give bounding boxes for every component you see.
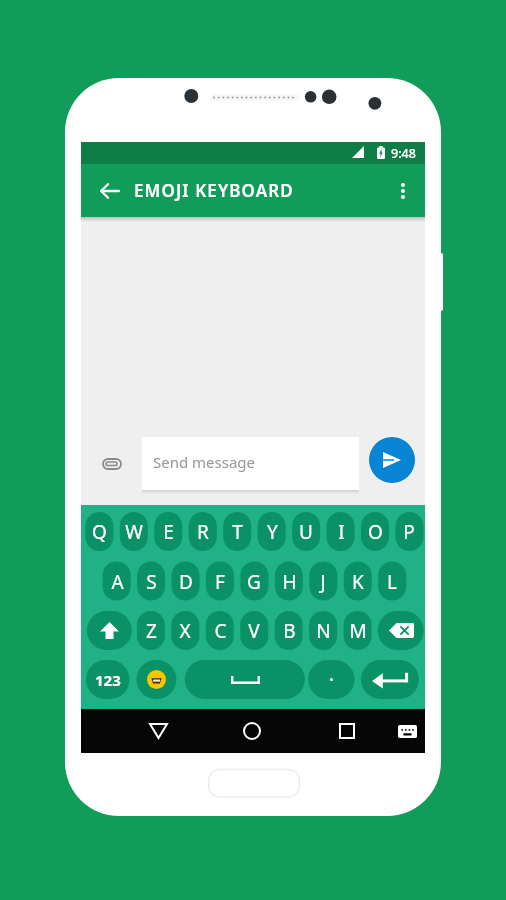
button[interactable]: Space <box>185 660 305 699</box>
button[interactable]: M <box>344 611 372 650</box>
button[interactable]: P <box>395 512 423 551</box>
button[interactable]: Emoji <box>136 660 176 699</box>
staticText: S <box>146 569 157 595</box>
staticText: V <box>248 618 260 644</box>
button[interactable]: A <box>103 562 131 601</box>
button[interactable]: H <box>275 562 303 601</box>
button[interactable]: S <box>137 562 165 601</box>
button[interactable]: C <box>206 611 234 650</box>
button[interactable]: Shift <box>87 611 132 650</box>
button[interactable]: U <box>292 512 320 551</box>
staticText: Q <box>92 519 107 545</box>
button[interactable]: More options <box>386 174 420 208</box>
staticText: B <box>283 618 296 644</box>
button[interactable]: K <box>344 562 372 601</box>
button[interactable]: B <box>275 611 303 650</box>
staticText: U <box>299 519 313 545</box>
button[interactable]: Q <box>85 512 113 551</box>
staticText: C <box>214 618 227 644</box>
staticText: O <box>368 519 383 545</box>
staticText: L <box>387 569 397 595</box>
button[interactable]: Change keyboard <box>390 714 424 748</box>
button[interactable]: Y <box>258 512 286 551</box>
button[interactable]: Home <box>233 712 271 750</box>
staticText: D <box>179 569 193 595</box>
staticText: E <box>163 519 174 545</box>
button[interactable]: X <box>171 611 199 650</box>
staticText: Z <box>146 618 157 644</box>
button[interactable]: T <box>223 512 251 551</box>
staticText: I <box>338 519 345 545</box>
button[interactable]: D <box>172 562 200 601</box>
button[interactable]: O <box>361 512 389 551</box>
button[interactable]: Enter <box>361 660 419 699</box>
button[interactable]: 123 <box>86 660 130 699</box>
button[interactable]: Send message <box>142 437 359 490</box>
button[interactable] <box>308 660 354 699</box>
button[interactable]: Backspace <box>378 611 424 650</box>
button[interactable]: N <box>309 611 337 650</box>
staticText: F <box>215 569 225 595</box>
button[interactable]: E <box>154 512 182 551</box>
button[interactable]: V <box>240 611 268 650</box>
button[interactable]: W <box>120 512 148 551</box>
staticText: X <box>179 618 191 644</box>
button[interactable]: I <box>327 512 355 551</box>
staticText: P <box>403 519 415 545</box>
staticText: EMOJI KEYBOARD <box>134 179 294 202</box>
button[interactable]: Send <box>369 437 415 483</box>
button[interactable]: Z <box>137 611 165 650</box>
staticText: G <box>247 569 261 595</box>
staticText: H <box>282 569 297 595</box>
button[interactable]: G <box>240 562 268 601</box>
staticText: T <box>232 519 243 545</box>
staticText: A <box>111 569 124 595</box>
staticText: W <box>125 519 143 545</box>
button[interactable]: Back <box>139 712 177 750</box>
staticText: M <box>349 618 367 644</box>
staticText: Send message <box>153 452 256 472</box>
button[interactable]: R <box>189 512 217 551</box>
button[interactable]: L <box>378 562 406 601</box>
button[interactable]: J <box>309 562 337 601</box>
staticText: J <box>320 569 326 595</box>
staticText: R <box>197 519 209 545</box>
staticText: 9:48 <box>391 145 416 162</box>
button[interactable]: Recent apps <box>328 712 366 750</box>
button[interactable]: Attach <box>98 450 126 478</box>
button[interactable]: Back <box>92 174 126 208</box>
staticText: K <box>352 569 364 595</box>
staticText: N <box>316 618 331 644</box>
button[interactable]: F <box>206 562 234 601</box>
staticText: 123 <box>95 670 121 690</box>
staticText: Y <box>267 519 278 545</box>
